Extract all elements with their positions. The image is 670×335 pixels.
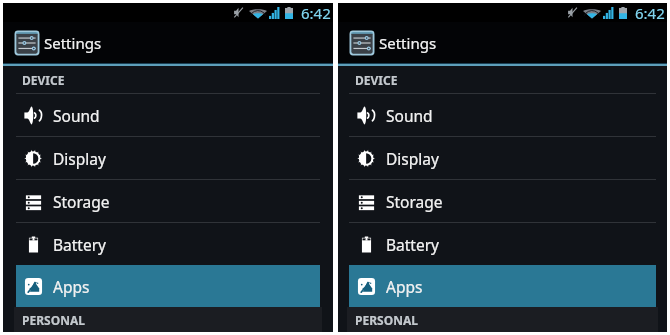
button[interactable]: Apps xyxy=(349,265,656,307)
button[interactable]: Battery xyxy=(349,223,656,265)
staticText: Battery xyxy=(53,234,107,255)
button[interactable]: Storage xyxy=(16,180,320,222)
other: Battery level xyxy=(619,7,627,19)
button[interactable]: Display xyxy=(16,137,320,179)
staticText: 6:42 xyxy=(301,3,331,22)
other: Ringer silenced xyxy=(567,6,578,19)
button[interactable]: Sound xyxy=(16,94,320,136)
button[interactable]: Battery xyxy=(16,223,320,265)
other: Settings app icon xyxy=(14,30,40,56)
staticText: DEVICE xyxy=(22,72,65,88)
staticText: DEVICE xyxy=(355,72,398,88)
staticText: PERSONAL xyxy=(355,312,418,328)
button[interactable]: Settings app icon xyxy=(3,22,333,63)
staticText: Display xyxy=(386,148,439,169)
other: Battery level xyxy=(285,7,293,19)
staticText: PERSONAL xyxy=(22,312,85,328)
other: Settings app icon xyxy=(349,30,375,56)
button[interactable]: Settings app icon xyxy=(338,22,667,63)
other: Wi-Fi signal xyxy=(583,7,601,19)
other: Mobile signal xyxy=(269,7,280,19)
staticText: Battery xyxy=(386,234,440,255)
button[interactable]: Apps xyxy=(16,265,320,307)
staticText: Settings xyxy=(379,33,437,53)
other: Wi-Fi signal xyxy=(249,7,267,19)
staticText: Sound xyxy=(386,105,433,126)
other: Mobile signal xyxy=(603,7,614,19)
staticText: Display xyxy=(53,148,106,169)
button[interactable]: Storage xyxy=(349,180,656,222)
staticText: Storage xyxy=(386,191,443,212)
staticText: Storage xyxy=(53,191,110,212)
staticText: 6:42 xyxy=(635,3,665,22)
staticText: Apps xyxy=(386,276,423,297)
staticText: Apps xyxy=(53,276,90,297)
button[interactable]: Display xyxy=(349,137,656,179)
button[interactable]: Sound xyxy=(349,94,656,136)
other: Ringer silenced xyxy=(233,6,244,19)
staticText: Settings xyxy=(44,33,102,53)
staticText: Sound xyxy=(53,105,100,126)
